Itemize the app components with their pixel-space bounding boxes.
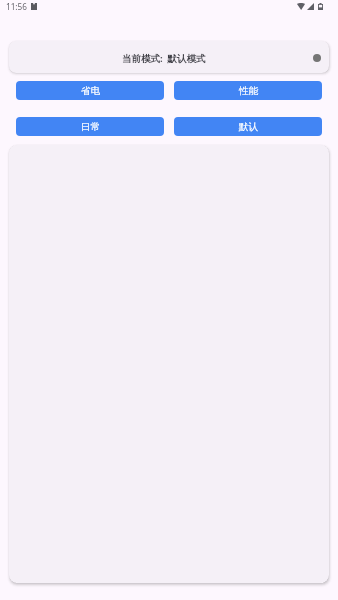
staticText: 当前模式: 默认模式 xyxy=(122,52,206,65)
other: 信号 xyxy=(307,3,314,10)
staticText: 性能 xyxy=(239,85,258,97)
button[interactable]: 性能 xyxy=(174,81,322,100)
other: WLAN xyxy=(297,3,305,10)
button[interactable]: 日常 xyxy=(16,117,164,136)
staticText: 11:56 xyxy=(6,1,27,12)
button[interactable]: 省电 xyxy=(16,81,164,100)
button[interactable]: 默认 xyxy=(174,117,322,136)
button[interactable]: 当前模式状态 xyxy=(313,54,321,62)
staticText: 日常 xyxy=(81,121,100,133)
staticText: 默认 xyxy=(239,121,258,133)
staticText: 省电 xyxy=(81,85,100,97)
other: 通知 xyxy=(31,3,37,10)
button[interactable]: 当前模式: 默认模式 xyxy=(9,41,329,73)
other: 电池 xyxy=(318,3,323,10)
